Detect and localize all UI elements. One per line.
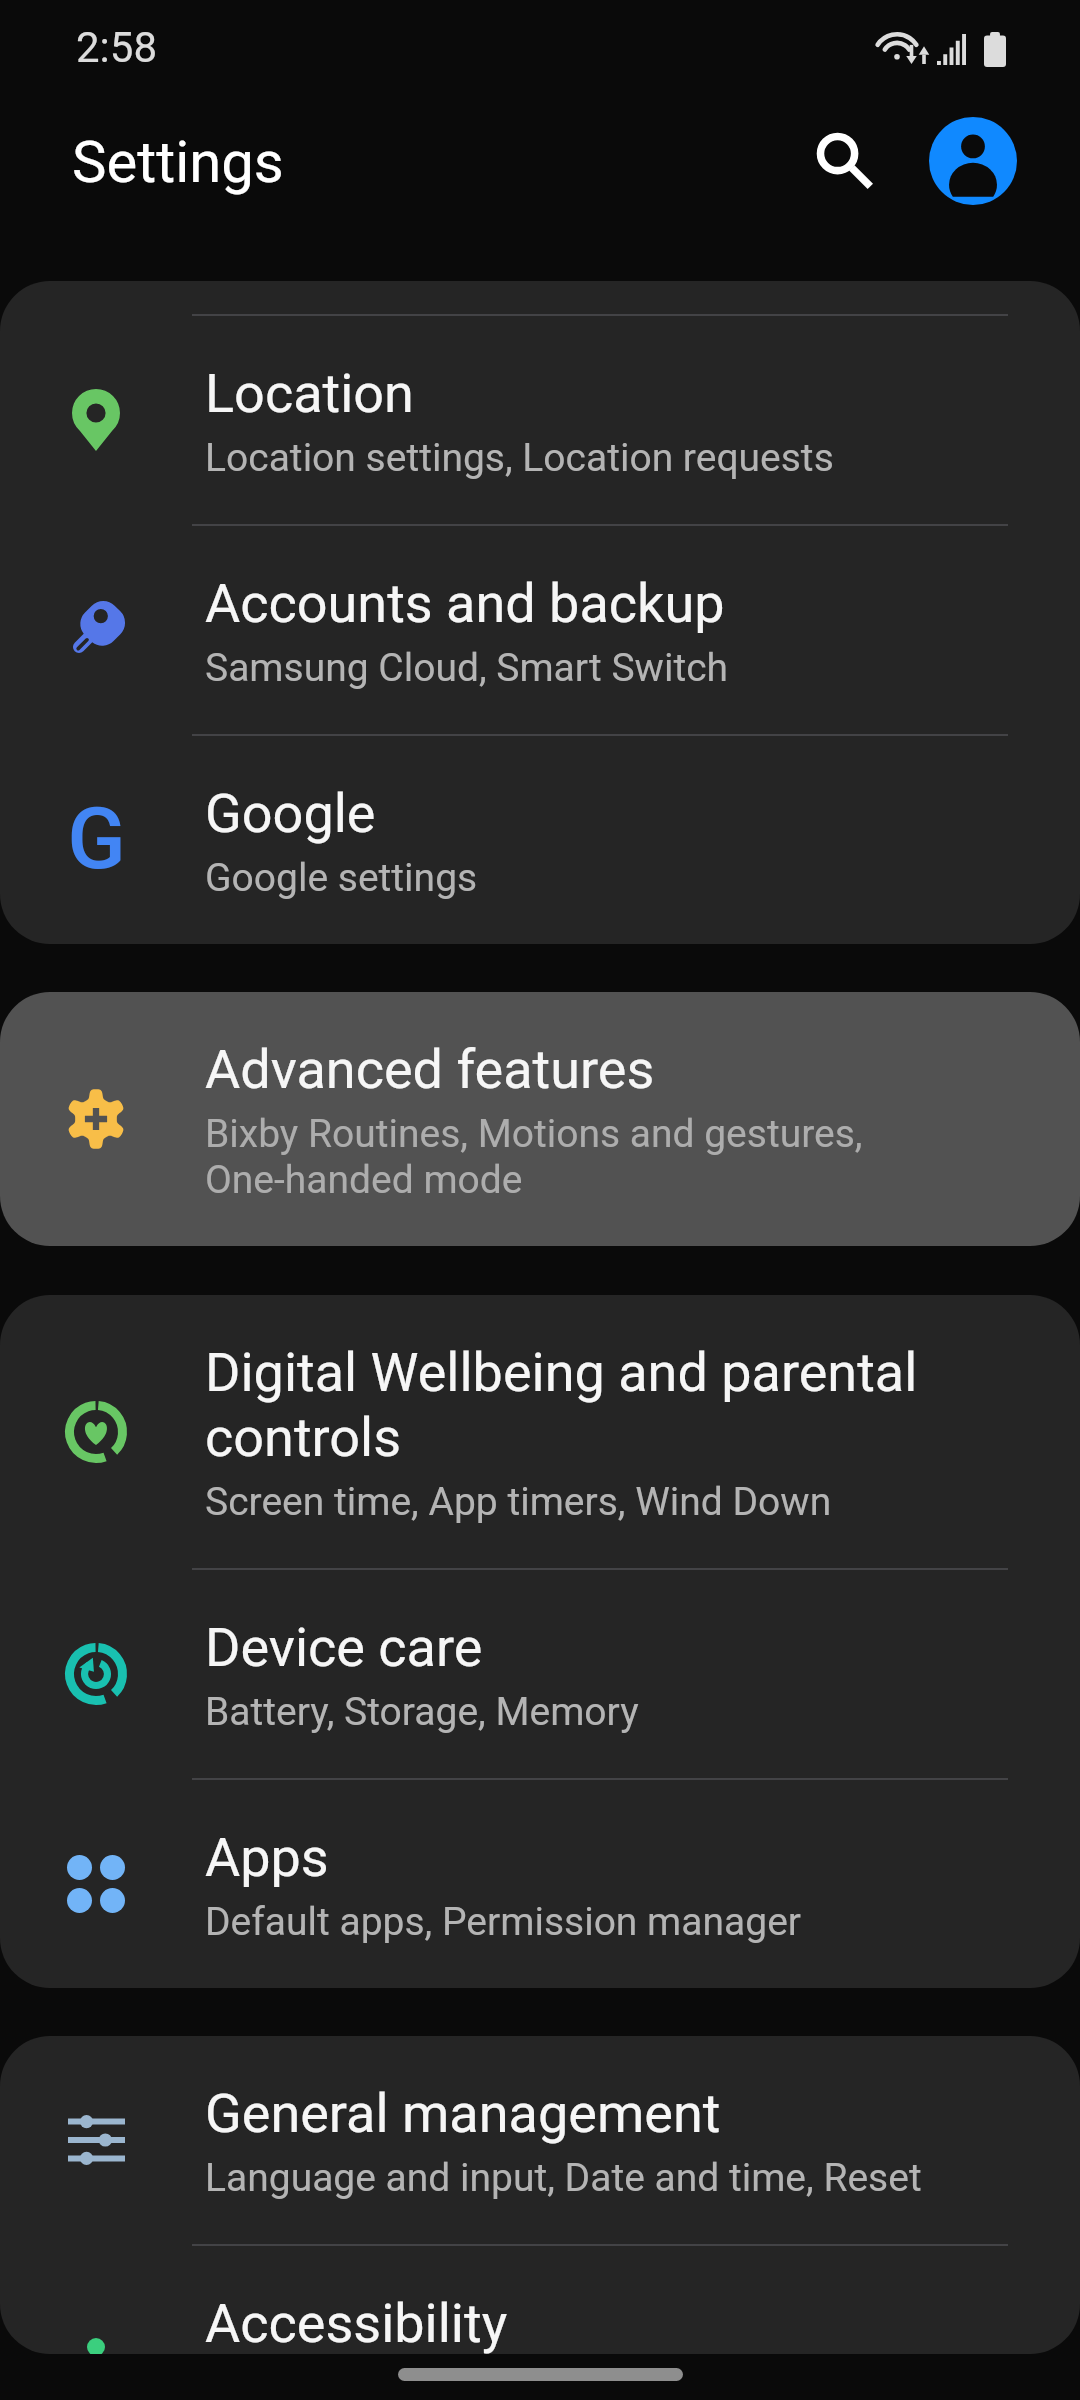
- staticText: Location settings, Location requests: [205, 435, 834, 481]
- staticText: Settings: [72, 128, 284, 196]
- button[interactable]: Google: [0, 736, 1080, 944]
- staticText: Accounts and backup: [205, 571, 725, 636]
- staticText: General management: [205, 2081, 721, 2146]
- button[interactable]: Profile: [923, 111, 1023, 211]
- staticText: Accessibility: [205, 2291, 508, 2354]
- button[interactable]: Digital Wellbeing and parental controls: [0, 1295, 1080, 1568]
- button[interactable]: Apps: [0, 1780, 1080, 1988]
- button[interactable]: General management: [0, 2036, 1080, 2244]
- staticText: Default apps, Permission manager: [205, 1899, 802, 1945]
- staticText: Bixby Routines, Motions and gestures, On…: [205, 1111, 863, 1203]
- staticText: Apps: [205, 1825, 329, 1890]
- button[interactable]: Accessibility: [0, 2246, 1080, 2354]
- staticText: G: [67, 788, 126, 888]
- staticText: Digital Wellbeing and parental controls: [205, 1340, 918, 1470]
- button[interactable]: Search: [794, 110, 894, 210]
- staticText: 2:58: [76, 23, 157, 72]
- button[interactable]: Advanced features: [0, 992, 1080, 1246]
- staticText: Samsung Cloud, Smart Switch: [205, 645, 729, 691]
- button[interactable]: Accounts and backup: [0, 526, 1080, 734]
- button[interactable]: Device care: [0, 1570, 1080, 1778]
- staticText: Google: [205, 781, 376, 846]
- staticText: Google settings: [205, 855, 478, 901]
- staticText: Location: [205, 361, 414, 426]
- staticText: Device care: [205, 1615, 483, 1680]
- staticText: Language and input, Date and time, Reset: [205, 2155, 922, 2201]
- staticText: Screen time, App timers, Wind Down: [205, 1479, 832, 1525]
- staticText: Battery, Storage, Memory: [205, 1689, 639, 1735]
- button[interactable]: Location: [0, 316, 1080, 524]
- staticText: Advanced features: [205, 1037, 655, 1102]
